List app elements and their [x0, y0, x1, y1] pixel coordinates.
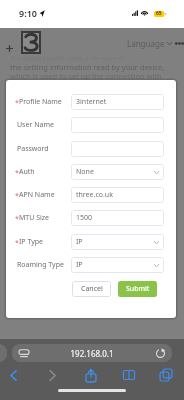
button[interactable]: three.co.uk — [71, 187, 164, 203]
staticText: Profile Name — [19, 97, 62, 107]
button[interactable]: 3internet — [71, 94, 164, 110]
button[interactable]: Forward — [41, 365, 63, 385]
staticText: * — [15, 98, 19, 108]
staticText: * — [15, 214, 19, 224]
staticText: 9:10 — [19, 7, 37, 19]
staticText: MTU Size — [19, 213, 50, 223]
button[interactable]: Submit — [118, 281, 157, 297]
button[interactable]: New tab — [4, 43, 14, 53]
button[interactable]: Tabs — [155, 365, 177, 385]
button[interactable]: IP — [71, 257, 164, 273]
button[interactable]: Language — [127, 38, 184, 49]
button[interactable] — [71, 141, 164, 157]
button[interactable]: Bookmarks — [118, 365, 140, 385]
staticText: 65 — [156, 10, 162, 17]
staticText: 3internet — [76, 97, 107, 107]
button[interactable]: 1500 — [71, 210, 164, 226]
button[interactable]: Cancel — [72, 281, 111, 297]
staticText: the setting information read by your dev… — [10, 62, 165, 72]
staticText: Language — [127, 38, 165, 49]
staticText: Roaming Type — [17, 260, 64, 270]
staticText: Submit — [126, 284, 150, 294]
other: Reload — [155, 348, 166, 359]
button[interactable]: IP — [71, 234, 164, 250]
button[interactable]: Page settings — [12, 344, 172, 362]
button[interactable]: Back — [2, 365, 24, 385]
other: More — [175, 42, 184, 45]
staticText: * — [15, 191, 19, 201]
staticText: 1500 — [76, 213, 93, 223]
staticText: Auth — [19, 167, 35, 177]
staticText: None — [76, 167, 94, 177]
staticText: three.co.uk — [76, 190, 113, 200]
staticText: which is used to set up the connection w… — [10, 71, 162, 81]
button[interactable] — [71, 117, 164, 133]
staticText: Cancel — [81, 284, 103, 294]
staticText: User Name — [17, 120, 54, 130]
staticText: APN Name — [19, 190, 55, 200]
staticText: * — [15, 238, 19, 248]
staticText: * — [15, 168, 19, 178]
staticText: Password — [17, 144, 49, 154]
staticText: IP — [76, 260, 83, 270]
other: Page settings — [19, 349, 29, 358]
staticText: IP Type — [19, 237, 44, 247]
staticText: 192.168.0.1 — [36, 348, 148, 359]
button[interactable]: None — [71, 164, 164, 180]
staticText: IP — [76, 237, 83, 247]
button[interactable]: Share — [80, 365, 102, 385]
